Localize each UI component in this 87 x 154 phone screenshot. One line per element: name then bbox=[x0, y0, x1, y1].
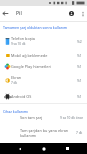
staticText: 7 dk bbox=[76, 131, 83, 135]
staticText: Google Play hizmetleri bbox=[11, 64, 51, 69]
staticText: Pil bbox=[16, 10, 22, 17]
staticText: Cihaz kullanımı bbox=[3, 109, 28, 114]
staticText: %2 bbox=[77, 39, 82, 44]
staticText: 9 sa 10 dk bbox=[11, 42, 26, 46]
staticText: %1 bbox=[77, 64, 82, 69]
button[interactable]: Mobil ağ beklemede bbox=[0, 49, 87, 61]
staticText: Ekran bbox=[11, 75, 22, 80]
staticText: Android OS bbox=[11, 94, 32, 99]
button[interactable]: Tam şarjdan bu yana ekran kullanımı bbox=[0, 124, 87, 141]
staticText: 7 dk bbox=[11, 81, 18, 85]
staticText: Mobil ağ beklemede bbox=[11, 53, 48, 58]
staticText: Tamamen şarj olduktan sonra kullanım bbox=[3, 25, 68, 30]
button[interactable]: Google Play hizmetleri bbox=[0, 60, 87, 72]
button[interactable]: Recents bbox=[61, 143, 73, 154]
button[interactable]: Battery saver bbox=[67, 9, 76, 18]
button[interactable]: Android OS bbox=[0, 88, 87, 104]
staticText: Son tam şarj bbox=[20, 115, 58, 120]
staticText: 9 sa 10 dk önce bbox=[60, 116, 83, 120]
button[interactable]: Back bbox=[1, 9, 10, 18]
staticText: Telefon boşta bbox=[11, 36, 35, 41]
staticText: %1 bbox=[77, 94, 82, 99]
button[interactable]: Ekran bbox=[0, 72, 87, 88]
button[interactable]: Son tam şarj bbox=[0, 112, 87, 123]
staticText: %1 bbox=[77, 78, 82, 83]
button[interactable]: Home bbox=[38, 143, 50, 154]
button[interactable]: More options bbox=[78, 9, 87, 18]
button[interactable]: Telefon boşta bbox=[0, 33, 87, 49]
staticText: Tam şarjdan bu yana ekran kullanımı bbox=[20, 128, 74, 138]
staticText: %1 bbox=[77, 53, 82, 58]
button[interactable]: Back bbox=[14, 143, 26, 154]
